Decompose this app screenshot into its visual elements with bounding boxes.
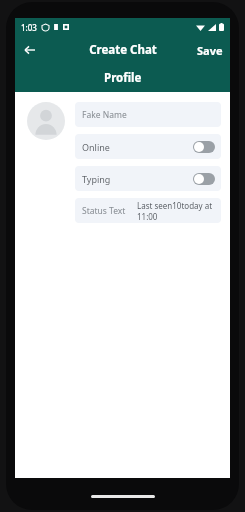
staticText: Online	[82, 141, 110, 153]
staticText: Create Chat	[89, 42, 157, 58]
staticText: Last seen10today at 11:00	[137, 200, 214, 222]
button[interactable]: Typing	[75, 166, 221, 191]
staticText: Fake Name	[82, 109, 127, 121]
staticText: Profile	[104, 70, 142, 86]
button[interactable]: Save	[190, 39, 230, 62]
staticText: 1:03	[21, 22, 37, 33]
button[interactable]: Change profile photo	[27, 102, 65, 140]
staticText: Typing	[82, 173, 111, 185]
button[interactable]: Fake Name	[75, 102, 221, 127]
button[interactable]: Back	[19, 39, 41, 61]
staticText: Save	[197, 43, 223, 58]
button[interactable]: Online	[75, 134, 221, 159]
staticText: Status Text	[82, 205, 126, 217]
button[interactable]: Status Text	[75, 198, 221, 223]
